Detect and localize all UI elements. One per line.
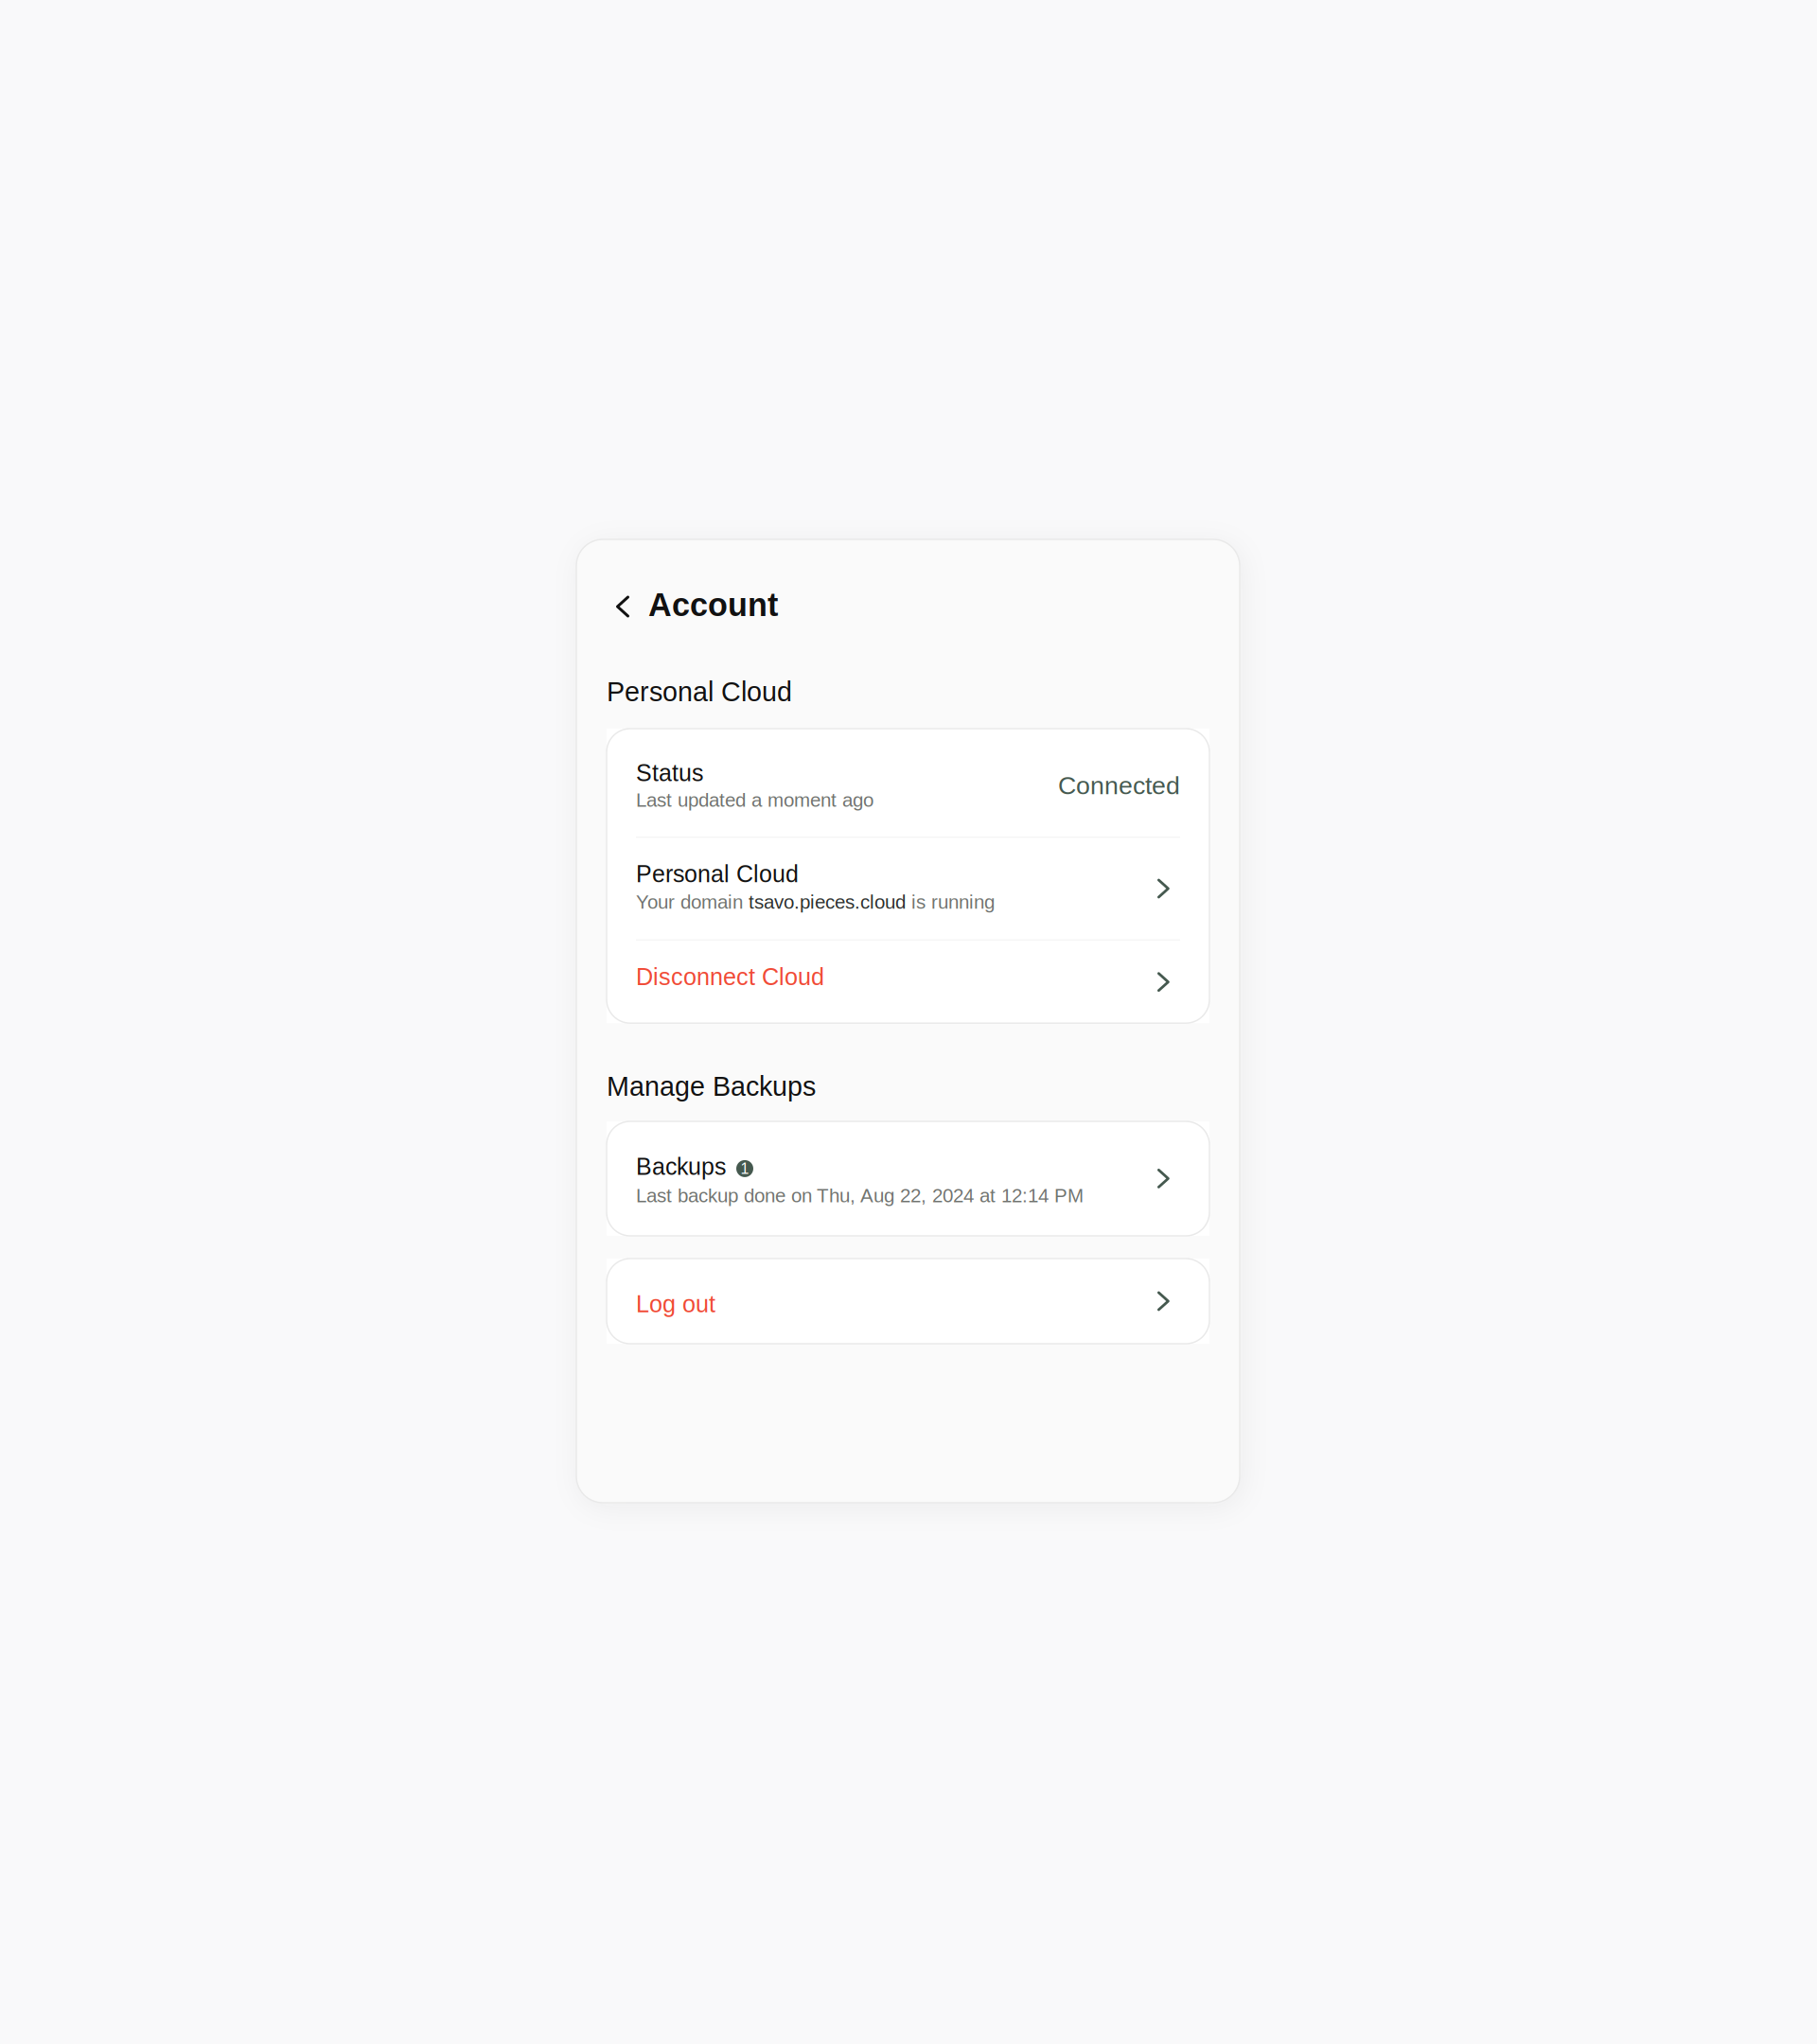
staticText: is running <box>906 891 995 913</box>
staticText: Account <box>648 587 778 623</box>
button[interactable]: Personal Cloud <box>607 838 1209 939</box>
button[interactable]: Log out <box>607 1259 1209 1344</box>
staticText: Last backup done on Thu, Aug 22, 2024 at… <box>636 1185 1084 1206</box>
button[interactable]: Disconnect Cloud <box>607 941 1209 1023</box>
staticText: 1 <box>741 1160 749 1177</box>
staticText: Backups <box>636 1154 726 1180</box>
staticText: Manage Backups <box>607 1071 816 1101</box>
staticText: Personal Cloud <box>607 677 792 707</box>
staticText: Log out <box>636 1291 715 1317</box>
button[interactable]: Back <box>607 586 639 627</box>
staticText: Personal Cloud <box>636 861 799 887</box>
staticText: Disconnect Cloud <box>636 964 824 990</box>
staticText: Status <box>636 760 703 786</box>
staticText: Your domain <box>636 891 749 913</box>
staticText: Last updated a moment ago <box>636 789 873 811</box>
staticText: Connected <box>1058 771 1180 799</box>
button[interactable]: Backups <box>607 1121 1209 1236</box>
staticText: tsavo.pieces.cloud <box>749 891 906 913</box>
